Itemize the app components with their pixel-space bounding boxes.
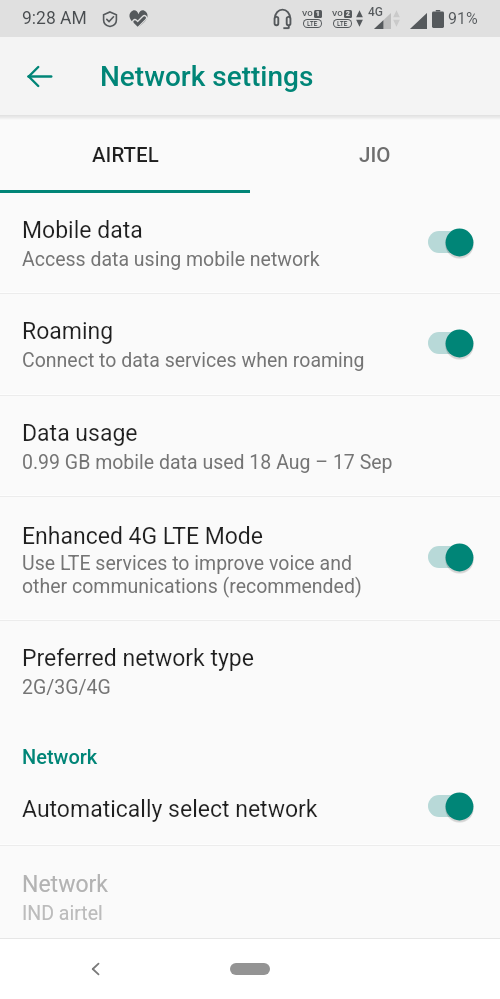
staticText: 91%	[448, 9, 478, 28]
button[interactable]: Data usage	[0, 396, 500, 495]
staticText: Automatically select network	[22, 796, 318, 823]
staticText: Network	[22, 871, 108, 898]
button[interactable]: Preferred network type	[0, 621, 500, 721]
button[interactable]: Toggle	[429, 227, 475, 257]
staticText: LTE	[337, 20, 348, 27]
staticText: LTE	[307, 20, 318, 27]
staticText: 2G/3G/4G	[22, 676, 111, 699]
staticText: Roaming	[22, 318, 114, 345]
staticText: VO	[332, 9, 343, 18]
button[interactable]: Home	[230, 963, 270, 975]
staticText: IND airtel	[22, 902, 103, 925]
button[interactable]: Toggle	[429, 791, 475, 821]
staticText: Connect to data services when roaming	[22, 349, 365, 372]
staticText: Network settings	[100, 60, 314, 93]
staticText: Access data using mobile network	[22, 248, 320, 271]
staticText: AIRTEL	[92, 143, 159, 167]
staticText: 4G	[368, 5, 383, 19]
staticText: Enhanced 4G LTE Mode	[22, 523, 264, 550]
staticText: Preferred network type	[22, 645, 254, 672]
button[interactable]: JIO	[250, 120, 500, 190]
button[interactable]: Roaming	[0, 294, 500, 394]
staticText: 9:28 AM	[22, 8, 87, 29]
staticText: 1	[316, 10, 320, 18]
staticText: 2	[346, 10, 350, 18]
button[interactable]: Back	[76, 949, 116, 989]
staticText: Network	[22, 745, 98, 768]
button[interactable]: Enhanced 4G LTE Mode	[0, 497, 500, 619]
staticText: 0.99 GB mobile data used 18 Aug – 17 Sep	[22, 451, 393, 474]
staticText: VO	[302, 9, 313, 18]
button[interactable]: Toggle	[429, 328, 475, 358]
button[interactable]: AIRTEL	[0, 120, 250, 190]
button[interactable]: Network	[0, 846, 500, 938]
button[interactable]: Toggle	[429, 542, 475, 572]
staticText: JIO	[359, 143, 391, 167]
staticText: Use LTE services to improve voice and ot…	[22, 552, 362, 598]
button[interactable]: Automatically select network	[0, 769, 500, 844]
staticText: Mobile data	[22, 217, 143, 244]
button[interactable]: Mobile data	[0, 193, 500, 292]
staticText: Data usage	[22, 420, 138, 447]
button[interactable]: Back	[15, 52, 63, 100]
